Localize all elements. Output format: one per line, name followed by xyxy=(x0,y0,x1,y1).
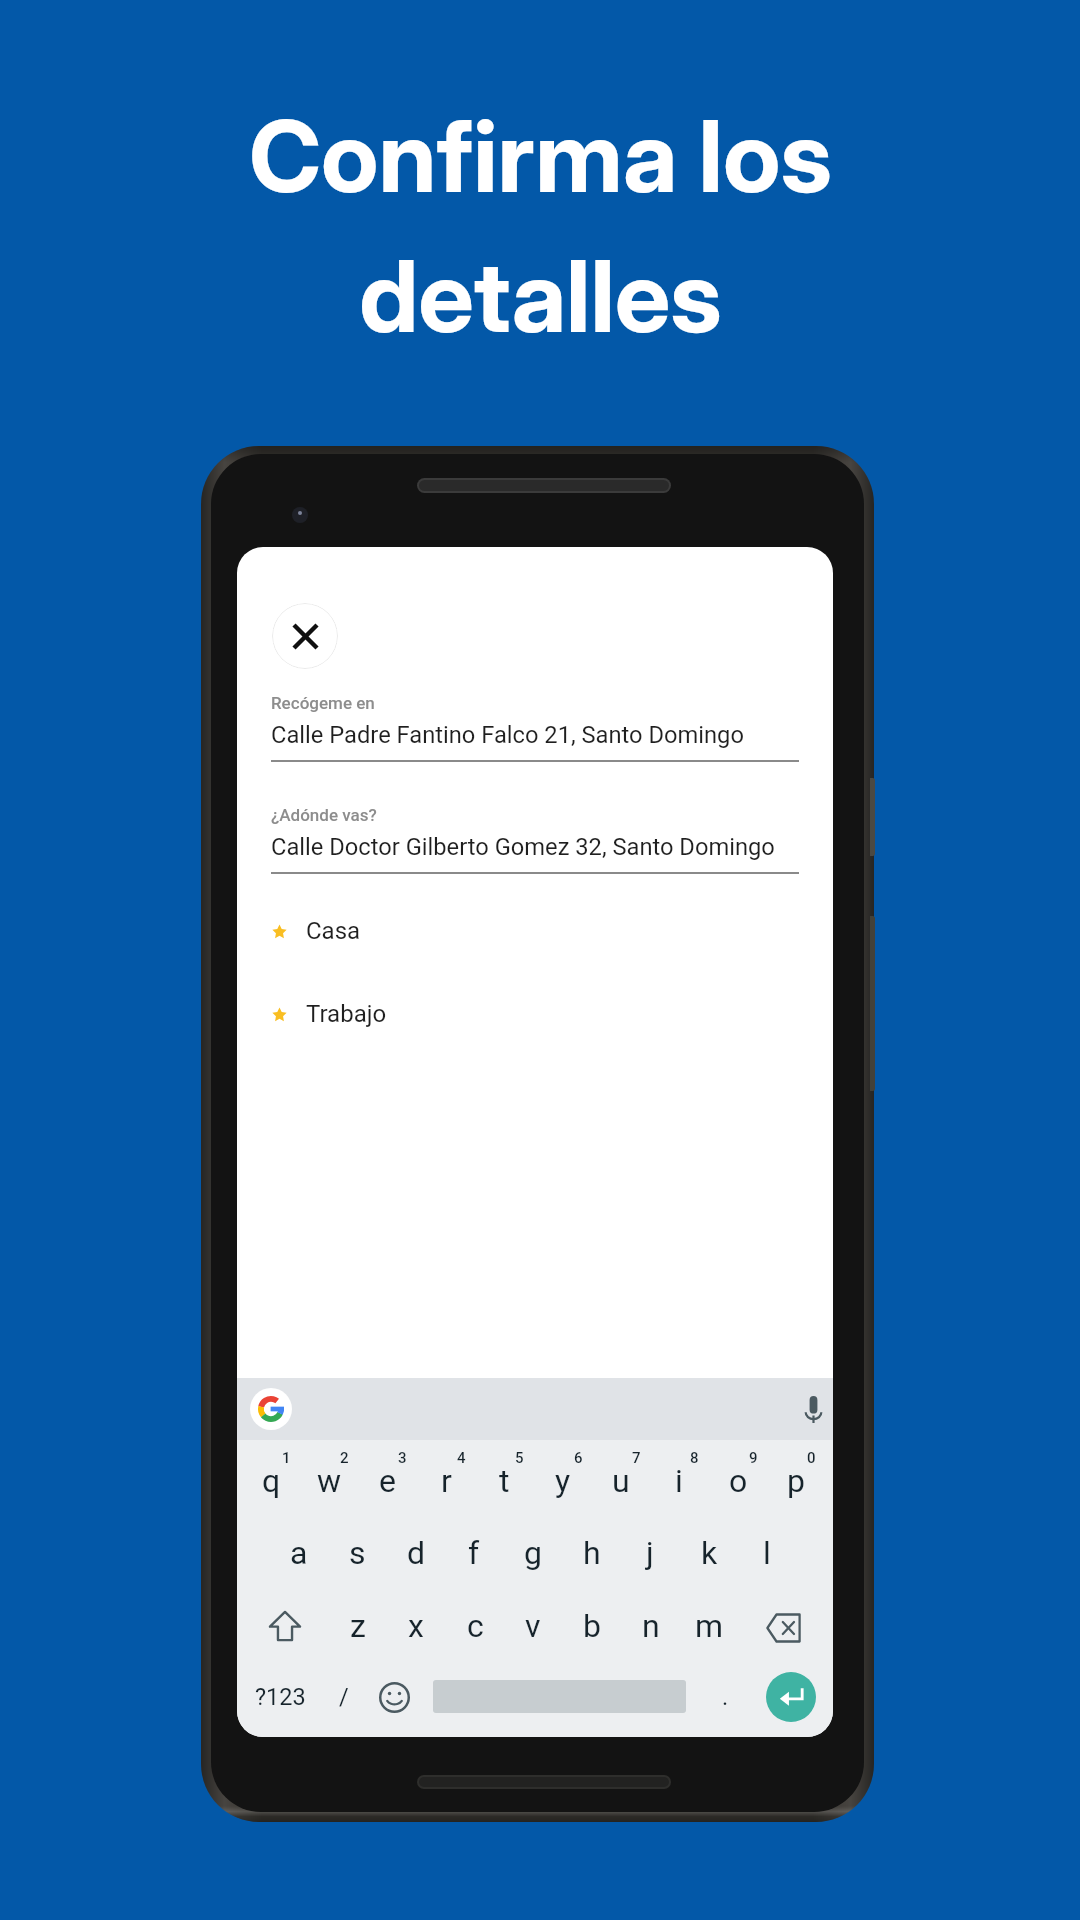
staticText: z xyxy=(350,1607,366,1645)
button[interactable]: w xyxy=(300,1446,358,1516)
button[interactable]: f xyxy=(445,1518,503,1588)
button[interactable]: . xyxy=(701,1664,749,1730)
staticText: d xyxy=(407,1534,426,1572)
button[interactable]: y xyxy=(534,1446,592,1516)
button[interactable]: j xyxy=(621,1518,679,1588)
staticText: n xyxy=(642,1607,660,1645)
button[interactable]: Cerrar xyxy=(272,603,338,669)
staticText: p xyxy=(787,1462,805,1500)
button[interactable]: o xyxy=(709,1446,767,1516)
staticText: 3 xyxy=(398,1449,407,1467)
button[interactable]: h xyxy=(563,1518,621,1588)
button[interactable]: e xyxy=(358,1446,416,1516)
staticText: 9 xyxy=(749,1449,758,1467)
staticText: Calle Padre Fantino Falco 21, Santo Domi… xyxy=(271,721,744,749)
staticText: Recógeme en xyxy=(271,693,375,713)
button[interactable]: k xyxy=(680,1518,738,1588)
staticText: v xyxy=(525,1607,541,1645)
staticText: o xyxy=(729,1462,748,1500)
staticText: s xyxy=(349,1534,366,1572)
button[interactable]: Recógeme en xyxy=(271,693,799,762)
staticText: ?123 xyxy=(255,1683,306,1711)
staticText: w xyxy=(317,1462,342,1500)
button[interactable]: r xyxy=(417,1446,475,1516)
staticText: u xyxy=(612,1462,630,1500)
button[interactable]: q xyxy=(242,1446,300,1516)
staticText: 6 xyxy=(574,1449,583,1467)
button[interactable]: c xyxy=(446,1591,504,1661)
button[interactable]: u xyxy=(592,1446,650,1516)
staticText: t xyxy=(499,1462,510,1500)
button[interactable]: m xyxy=(680,1591,738,1661)
staticText: b xyxy=(583,1607,601,1645)
button[interactable]: t xyxy=(475,1446,533,1516)
staticText: l xyxy=(763,1534,771,1572)
staticText: x xyxy=(408,1607,424,1645)
staticText: g xyxy=(524,1534,542,1572)
button[interactable]: g xyxy=(504,1518,562,1588)
staticText: 4 xyxy=(457,1449,466,1467)
button[interactable]: i xyxy=(650,1446,708,1516)
staticText: f xyxy=(468,1534,480,1572)
staticText: r xyxy=(441,1462,452,1500)
button[interactable]: Retroceso xyxy=(741,1593,825,1663)
button[interactable]: a xyxy=(270,1518,328,1588)
staticText: k xyxy=(701,1534,718,1572)
button[interactable]: s xyxy=(328,1518,386,1588)
staticText: Confirma los detalles xyxy=(249,96,832,356)
staticText: h xyxy=(583,1534,601,1572)
button[interactable]: / xyxy=(320,1664,368,1730)
button[interactable]: x xyxy=(387,1591,445,1661)
staticText: a xyxy=(290,1534,308,1572)
staticText: i xyxy=(675,1462,683,1500)
button[interactable]: Casa xyxy=(237,905,833,957)
staticText: j xyxy=(646,1534,654,1572)
button[interactable]: Dictado por voz xyxy=(796,1391,831,1427)
button[interactable]: v xyxy=(504,1591,562,1661)
button[interactable]: Mayúsculas xyxy=(243,1591,327,1661)
staticText: Trabajo xyxy=(306,1000,387,1028)
staticText: e xyxy=(379,1462,396,1500)
button[interactable] xyxy=(423,1663,695,1729)
staticText: 5 xyxy=(515,1449,524,1467)
staticText: q xyxy=(262,1462,281,1500)
staticText: 2 xyxy=(340,1449,349,1467)
button[interactable]: b xyxy=(563,1591,621,1661)
staticText: Calle Doctor Gilberto Gomez 32, Santo Do… xyxy=(271,833,775,861)
button[interactable]: Emoji xyxy=(369,1664,419,1730)
button[interactable]: l xyxy=(738,1518,796,1588)
staticText: 8 xyxy=(690,1449,699,1467)
staticText: Casa xyxy=(306,917,361,945)
button[interactable]: Google xyxy=(250,1388,292,1430)
staticText: / xyxy=(339,1683,349,1711)
staticText: 1 xyxy=(282,1449,291,1467)
staticText: c xyxy=(467,1607,484,1645)
staticText: 7 xyxy=(632,1449,641,1467)
button[interactable]: Trabajo xyxy=(237,988,833,1040)
button[interactable]: n xyxy=(622,1591,680,1661)
button[interactable]: z xyxy=(329,1591,387,1661)
staticText: y xyxy=(555,1462,571,1500)
staticText: 0 xyxy=(807,1449,816,1467)
staticText: m xyxy=(695,1607,724,1645)
button[interactable]: Intro xyxy=(756,1664,826,1730)
button[interactable]: ?123 xyxy=(237,1664,323,1730)
staticText: ¿Adónde vas? xyxy=(271,805,377,825)
button[interactable]: p xyxy=(767,1446,825,1516)
staticText: . xyxy=(722,1683,729,1711)
button[interactable]: d xyxy=(387,1518,445,1588)
button[interactable]: ¿Adónde vas? xyxy=(271,805,799,874)
